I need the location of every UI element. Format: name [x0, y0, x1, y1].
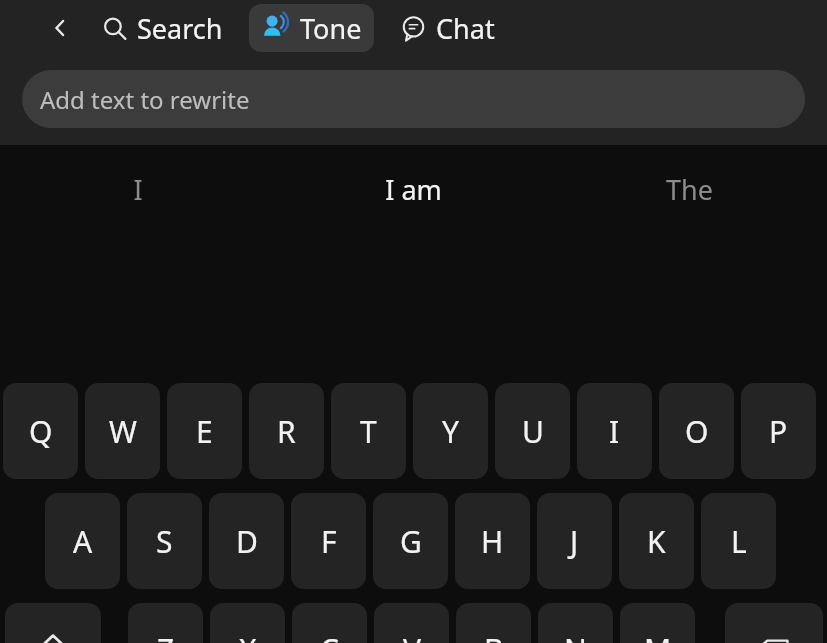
button[interactable]: V	[374, 603, 449, 643]
button[interactable]: N	[538, 603, 613, 643]
staticText: N	[564, 629, 587, 643]
staticText: P	[769, 411, 788, 452]
button[interactable]: I	[577, 383, 652, 479]
staticText: Chat	[436, 10, 495, 47]
staticText: B	[484, 629, 504, 643]
staticText: Q	[29, 411, 53, 452]
button[interactable]: R	[249, 383, 324, 479]
button[interactable]: E	[167, 383, 242, 479]
staticText: U	[522, 411, 544, 452]
button[interactable]: Add text to rewrite	[22, 70, 805, 128]
button[interactable]: Backspace	[725, 603, 823, 643]
staticText: A	[73, 521, 93, 562]
staticText: J	[570, 521, 579, 562]
button[interactable]: The	[551, 145, 827, 233]
button[interactable]: B	[456, 603, 531, 643]
staticText: Y	[442, 411, 459, 452]
staticText: Add text to rewrite	[40, 83, 250, 116]
staticText: K	[647, 521, 666, 562]
staticText: E	[196, 411, 213, 452]
button[interactable]: J	[537, 493, 612, 589]
button[interactable]: W	[85, 383, 160, 479]
button[interactable]: S	[127, 493, 202, 589]
staticText: S	[156, 521, 173, 562]
staticText: Search	[137, 10, 223, 47]
staticText: O	[685, 411, 709, 452]
button[interactable]: M	[620, 603, 695, 643]
staticText: C	[320, 629, 339, 643]
staticText: G	[400, 521, 422, 562]
button[interactable]: H	[455, 493, 530, 589]
button[interactable]: G	[373, 493, 448, 589]
button[interactable]: K	[619, 493, 694, 589]
staticText: Z	[157, 629, 175, 643]
button[interactable]: Chat	[392, 2, 503, 55]
staticText: T	[360, 411, 377, 452]
button[interactable]: I am	[275, 145, 551, 233]
button[interactable]: T	[331, 383, 406, 479]
staticText: M	[644, 629, 672, 643]
button[interactable]: Tone	[249, 4, 374, 52]
staticText: R	[277, 411, 296, 452]
button[interactable]: Z	[128, 603, 203, 643]
staticText: V	[403, 629, 421, 643]
staticText: Tone	[300, 10, 362, 47]
button[interactable]: F	[291, 493, 366, 589]
staticText: X	[239, 629, 257, 643]
button[interactable]: U	[495, 383, 570, 479]
button[interactable]: A	[45, 493, 120, 589]
staticText: L	[731, 521, 747, 562]
button[interactable]: I	[0, 145, 275, 233]
staticText: I	[609, 411, 620, 452]
button[interactable]: Back	[38, 6, 82, 50]
staticText: W	[109, 411, 137, 452]
button[interactable]: Y	[413, 383, 488, 479]
button[interactable]: L	[701, 493, 776, 589]
staticText: H	[481, 521, 504, 562]
staticText: I am	[385, 171, 442, 208]
button[interactable]: X	[210, 603, 285, 643]
button[interactable]: D	[209, 493, 284, 589]
button[interactable]: O	[659, 383, 734, 479]
staticText: F	[321, 521, 337, 562]
button[interactable]: Search	[92, 2, 233, 55]
button[interactable]: Shift	[5, 603, 101, 643]
button[interactable]: Q	[3, 383, 78, 479]
staticText: D	[236, 521, 258, 562]
staticText: I	[133, 171, 143, 208]
button[interactable]: C	[292, 603, 367, 643]
button[interactable]: P	[741, 383, 816, 479]
staticText: The	[666, 171, 713, 208]
